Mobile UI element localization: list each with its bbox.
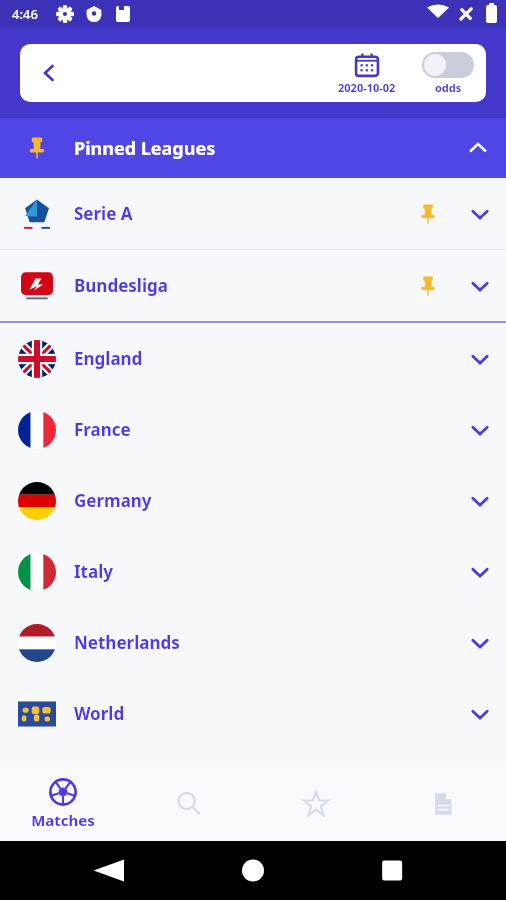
button[interactable]: Expand Germany [454, 465, 506, 536]
staticText: Serie A [74, 202, 133, 225]
button[interactable]: Germany [0, 465, 506, 536]
button[interactable]: Expand Serie A [454, 178, 506, 249]
button[interactable]: England [0, 323, 506, 394]
button[interactable]: News [379, 766, 506, 841]
staticText: France [74, 418, 131, 441]
staticText: Germany [74, 489, 152, 512]
button[interactable]: Unpin Serie A [406, 192, 450, 236]
button[interactable]: Pinned Leagues [0, 118, 506, 178]
staticText: England [74, 347, 143, 370]
button[interactable]: Italy [0, 536, 506, 607]
staticText: Netherlands [74, 631, 180, 654]
button[interactable]: Favourites [252, 766, 379, 841]
staticText: Matches [31, 810, 95, 830]
button[interactable]: Netherlands [0, 607, 506, 678]
button[interactable]: Expand Italy [454, 536, 506, 607]
button[interactable]: 2020-10-02 [334, 50, 400, 97]
staticText: 2020-10-02 [338, 80, 396, 95]
button[interactable]: Serie A [0, 178, 506, 249]
button[interactable]: Expand England [454, 323, 506, 394]
staticText: odds [435, 80, 462, 95]
staticText: Italy [74, 560, 113, 583]
button[interactable]: Matches [0, 766, 126, 841]
button[interactable]: World [0, 678, 506, 749]
button[interactable]: France [0, 394, 506, 465]
button[interactable]: Expand Bundesliga [454, 250, 506, 321]
button[interactable]: Search [126, 766, 252, 841]
button[interactable]: Unpin Bundesliga [406, 264, 450, 308]
button[interactable]: Back [20, 44, 78, 102]
button[interactable]: odds [418, 50, 478, 97]
staticText: 4:46 [12, 5, 38, 23]
button[interactable]: Expand World [454, 678, 506, 749]
staticText: World [74, 702, 125, 725]
button[interactable]: Expand Netherlands [454, 607, 506, 678]
button[interactable]: Expand France [454, 394, 506, 465]
staticText: Bundesliga [74, 274, 168, 297]
button[interactable]: Bundesliga [0, 250, 506, 321]
staticText: Pinned Leagues [74, 136, 216, 161]
